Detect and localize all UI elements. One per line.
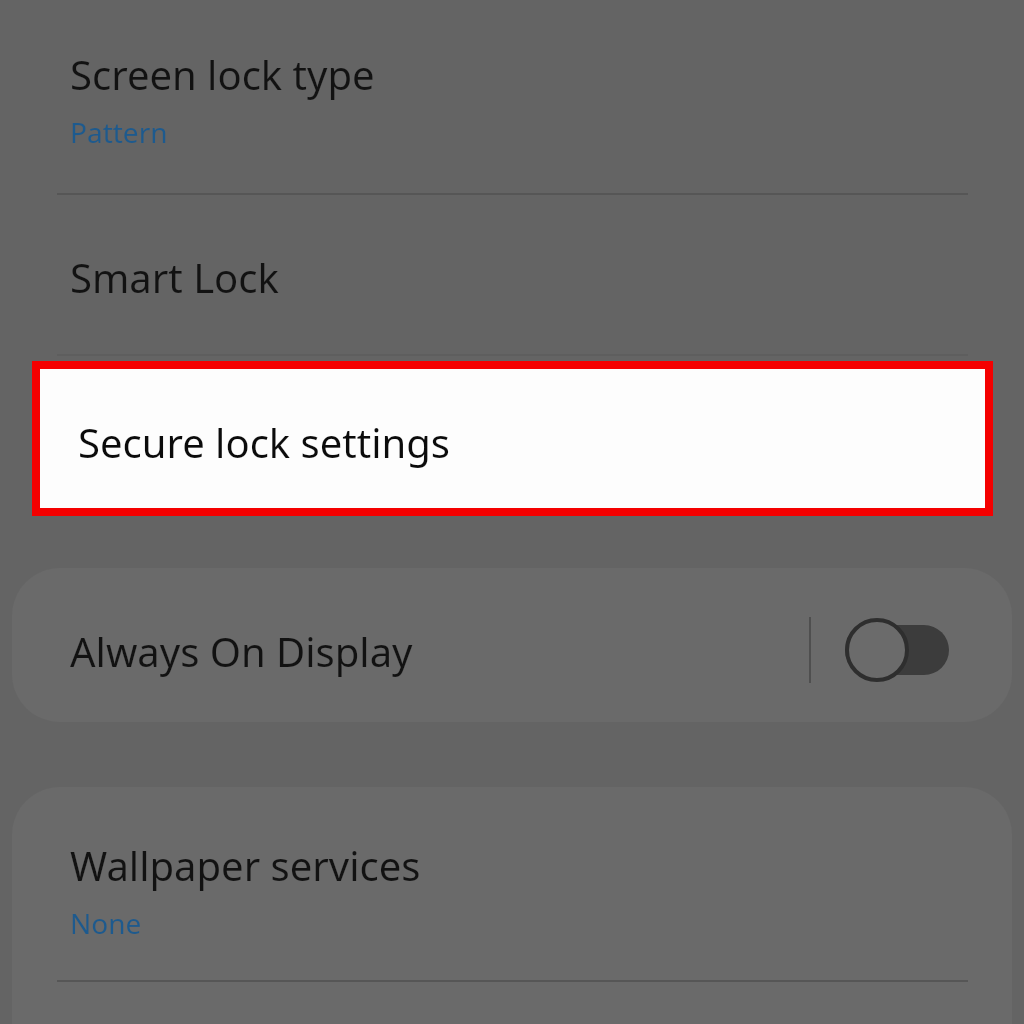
button[interactable]: Smart Lock	[0, 195, 1024, 355]
button[interactable]: Wallpaper services	[12, 787, 1012, 1024]
staticText: None	[70, 904, 142, 942]
button[interactable]: Screen lock type	[0, 0, 1024, 194]
staticText: Secure lock settings	[78, 415, 450, 469]
staticText: Always On Display	[70, 624, 413, 678]
button[interactable]: Always On Display toggle	[838, 608, 956, 692]
staticText: Screen lock type	[70, 47, 375, 101]
staticText: Pattern	[70, 113, 168, 151]
button[interactable]: Always On Display	[12, 568, 1012, 722]
staticText: Wallpaper services	[70, 838, 421, 892]
staticText: Smart Lock	[70, 250, 279, 304]
button[interactable]: Secure lock settings	[32, 361, 993, 516]
